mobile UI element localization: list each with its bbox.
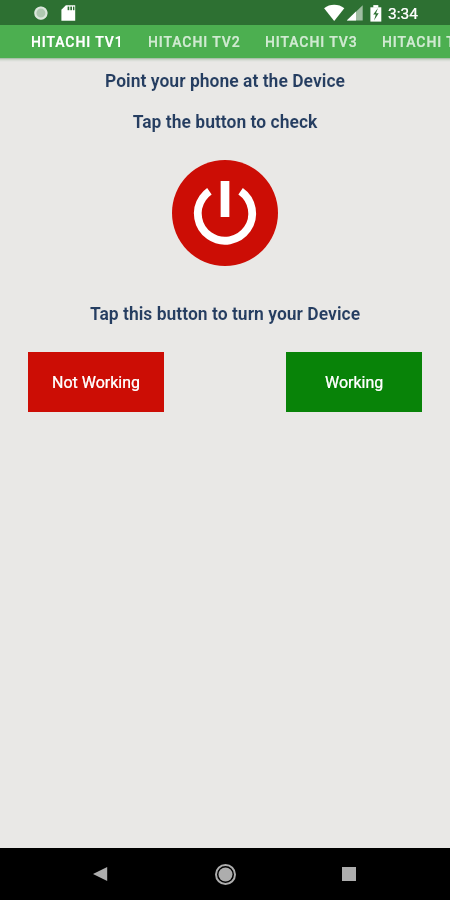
staticText: 3:34 [388,5,418,23]
staticText: Tap the button to check [0,112,450,133]
staticText: HITACHI TV1 [31,34,124,50]
staticText: Not Working [52,373,141,392]
button[interactable]: HITACHI TV2 [136,25,253,58]
button[interactable]: Home [203,848,247,900]
button[interactable]: HITACHI TV4 [370,25,450,58]
button[interactable]: Working [286,352,422,412]
button[interactable]: HITACHI TV1 [19,25,136,58]
staticText: HITACHI TV2 [148,34,241,50]
staticText: HITACHI TV3 [265,34,358,50]
button[interactable]: Recents [327,848,371,900]
staticText: Tap this button to turn your Device [0,304,450,325]
staticText: Point your phone at the Device [0,71,450,92]
staticText: Working [325,373,384,392]
staticText: HITACHI TV4 [382,34,450,50]
button[interactable]: Power [172,160,278,266]
button[interactable]: HITACHI TV3 [253,25,370,58]
button[interactable]: Not Working [28,352,164,412]
button[interactable]: Back [78,848,122,900]
